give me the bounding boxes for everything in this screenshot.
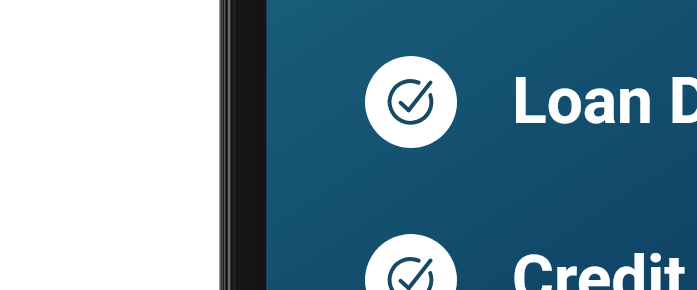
staticText: Loan Disbursal [512, 64, 697, 139]
button[interactable]: Completed [365, 56, 457, 148]
staticText: Credit Line [512, 242, 697, 290]
button[interactable]: Loan Disbursal [512, 64, 697, 139]
button[interactable]: Credit Line [512, 242, 697, 290]
button[interactable]: Completed [365, 234, 457, 290]
